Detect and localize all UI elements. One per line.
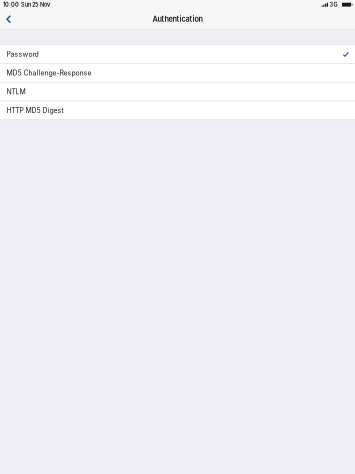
button[interactable]: HTTP MD5 Digest: [0, 102, 355, 119]
staticText: Authentication: [152, 15, 202, 24]
staticText: Sun 25 Nov: [21, 1, 50, 8]
staticText: MD5 Challenge-Response: [7, 69, 92, 77]
staticText: HTTP MD5 Digest: [7, 106, 64, 115]
button[interactable]: Password: [0, 45, 355, 63]
staticText: NTLM: [7, 87, 26, 96]
staticText: 3G: [330, 1, 338, 8]
button[interactable]: NTLM: [0, 83, 355, 100]
button[interactable]: MD5 Challenge-Response: [0, 64, 355, 82]
staticText: Password: [7, 50, 39, 58]
button[interactable]: Back: [0, 10, 20, 28]
staticText: 10:00: [3, 1, 19, 8]
